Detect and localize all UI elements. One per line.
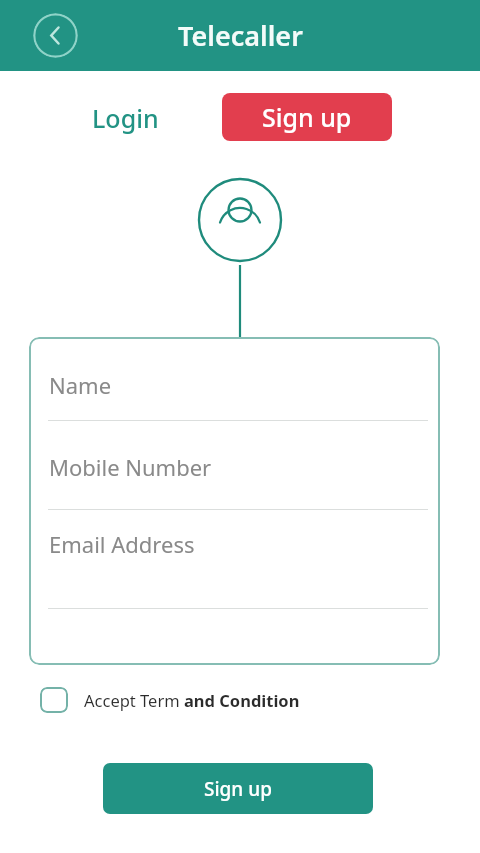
staticText: Accept Term and Condition bbox=[84, 689, 300, 711]
button[interactable]: Back bbox=[33, 13, 78, 58]
staticText: Login bbox=[92, 101, 159, 135]
button[interactable]: Sign up bbox=[222, 93, 392, 141]
staticText: Mobile Number bbox=[49, 452, 212, 482]
button[interactable]: Mobile Number bbox=[49, 425, 420, 509]
button[interactable]: Name bbox=[49, 349, 420, 421]
button[interactable]: Login bbox=[84, 95, 167, 141]
staticText: Telecaller bbox=[178, 17, 303, 54]
staticText: Sign up bbox=[262, 100, 352, 134]
staticText: Name bbox=[49, 370, 112, 400]
staticText: Email Address bbox=[49, 529, 195, 559]
button[interactable]: Sign up bbox=[103, 763, 373, 814]
button[interactable]: Email Address bbox=[49, 513, 420, 608]
staticText: Sign up bbox=[204, 776, 272, 802]
button[interactable]: Accept Term and Condition bbox=[34, 681, 306, 719]
